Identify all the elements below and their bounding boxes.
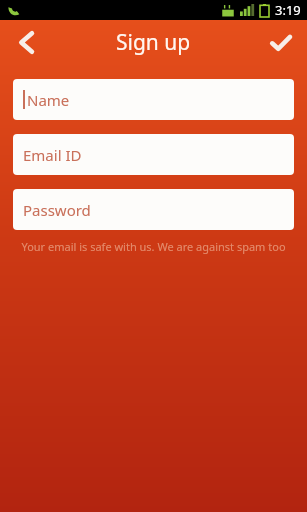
staticText: Name	[27, 90, 70, 110]
button[interactable]: Password	[13, 189, 294, 230]
staticText: 3:19	[275, 1, 301, 19]
staticText: Sign up	[116, 28, 191, 57]
staticText: Your email is safe with us. We are again…	[21, 239, 286, 254]
staticText: Email ID	[23, 145, 82, 165]
button[interactable]: Email ID	[13, 134, 294, 175]
button[interactable]: Name	[13, 79, 294, 120]
button[interactable]: Done	[255, 20, 307, 65]
button[interactable]: Back	[0, 20, 52, 65]
staticText: Password	[23, 200, 91, 220]
